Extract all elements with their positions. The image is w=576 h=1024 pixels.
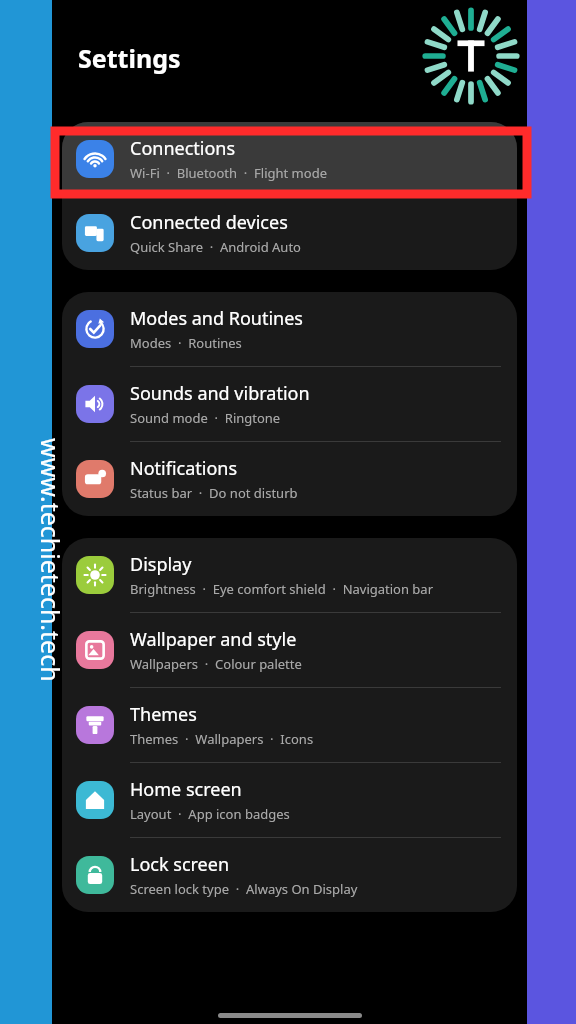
staticText: Brightness · Eye comfort shield · Naviga… — [130, 580, 434, 598]
button[interactable]: Techie Tech logo — [419, 4, 523, 108]
staticText: Modes · Routines — [130, 334, 242, 352]
button[interactable]: Connections — [62, 122, 517, 196]
staticText: Screen lock type · Always On Display — [130, 880, 358, 898]
button[interactable]: Wallpaper and style — [62, 613, 517, 687]
staticText: www.techietech.tech — [34, 438, 68, 738]
staticText: Modes and Routines — [130, 306, 303, 331]
staticText: Wi-Fi · Bluetooth · Flight mode — [130, 164, 327, 182]
staticText: Status bar · Do not disturb — [130, 484, 298, 502]
button[interactable]: Lock screen — [62, 838, 517, 912]
staticText: Settings — [78, 41, 181, 75]
staticText: Quick Share · Android Auto — [130, 238, 301, 256]
staticText: Connections — [130, 136, 236, 161]
button[interactable]: Connected devices — [62, 196, 517, 270]
staticText: Lock screen — [130, 852, 230, 877]
staticText: Display — [130, 552, 192, 577]
staticText: Connected devices — [130, 210, 288, 235]
staticText: Themes · Wallpapers · Icons — [130, 730, 314, 748]
staticText: Sounds and vibration — [130, 381, 310, 406]
button[interactable]: Home screen — [62, 763, 517, 837]
button[interactable]: Modes and Routines — [62, 292, 517, 366]
staticText: Layout · App icon badges — [130, 805, 290, 823]
button[interactable]: Sounds and vibration — [62, 367, 517, 441]
button[interactable]: Themes — [62, 688, 517, 762]
button[interactable]: Display — [62, 538, 517, 612]
staticText: Home screen — [130, 777, 242, 802]
staticText: Sound mode · Ringtone — [130, 409, 281, 427]
staticText: Themes — [130, 702, 197, 727]
button[interactable]: Notifications — [62, 442, 517, 516]
staticText: Notifications — [130, 456, 238, 481]
staticText: Wallpapers · Colour palette — [130, 655, 302, 673]
staticText: Wallpaper and style — [130, 627, 297, 652]
